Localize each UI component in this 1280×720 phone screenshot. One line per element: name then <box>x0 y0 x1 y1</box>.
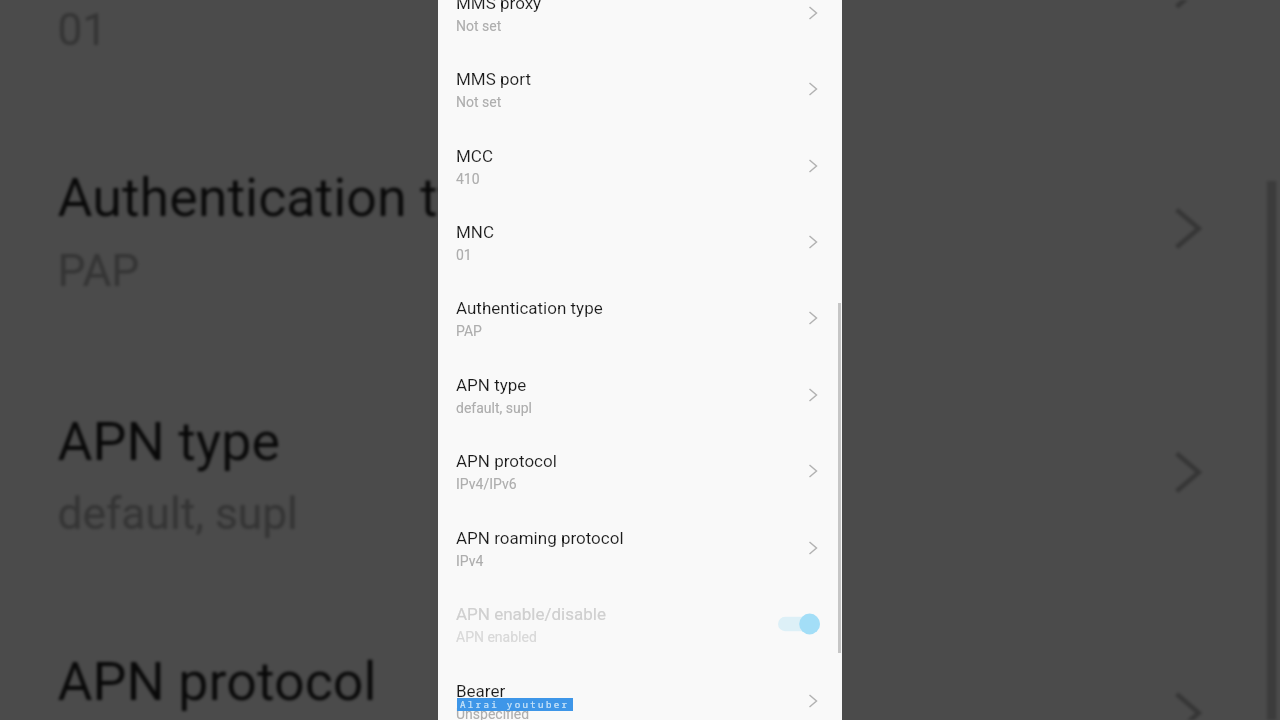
other: Open MCC <box>806 156 820 176</box>
other: Open APN type <box>1166 441 1210 504</box>
staticText: Unspecified <box>456 706 530 720</box>
button[interactable]: Bearer <box>438 665 842 720</box>
button[interactable]: MNC <box>0 0 1280 114</box>
staticText: APN type <box>456 375 527 395</box>
staticText: PAP <box>456 323 482 339</box>
staticText: APN protocol <box>57 650 377 713</box>
button[interactable]: MNC <box>438 206 842 282</box>
staticText: APN enable/disable <box>456 604 606 624</box>
staticText: Not set <box>456 18 502 34</box>
staticText: MCC <box>456 146 493 166</box>
staticText: MNC <box>456 222 495 242</box>
staticText: MMS proxy <box>456 0 542 13</box>
staticText: 01 <box>57 4 108 54</box>
staticText: PAP <box>57 244 140 295</box>
other: Open MNC <box>806 232 820 252</box>
button[interactable]: APN type <box>438 359 842 435</box>
staticText: APN type <box>57 409 282 472</box>
button[interactable]: APN roaming protocol <box>438 512 842 588</box>
staticText: default, supl <box>456 400 532 416</box>
staticText: Bearer <box>456 681 506 701</box>
button[interactable]: Authentication type <box>0 115 1280 355</box>
button[interactable]: MMS proxy <box>438 0 842 53</box>
staticText: IPv4/IPv6 <box>456 476 517 492</box>
staticText: Authentication type <box>456 298 603 318</box>
other: Open MMS port <box>806 79 820 99</box>
button[interactable]: APN enable/disable <box>438 588 842 664</box>
button[interactable]: APN protocol <box>438 435 842 511</box>
staticText: 01 <box>456 247 472 263</box>
other: Open Authentication type <box>806 308 820 328</box>
other: Open APN roaming protocol <box>806 538 820 558</box>
staticText: default, supl <box>57 488 298 539</box>
other: Open APN protocol <box>1166 681 1210 720</box>
staticText: 410 <box>456 171 480 187</box>
staticText: Authentication type <box>57 165 523 228</box>
other: Open MNC <box>1166 0 1210 20</box>
staticText: Alrai youtuber <box>460 698 570 711</box>
other: Open Authentication type <box>1166 197 1210 260</box>
staticText: APN enabled <box>456 629 537 645</box>
button[interactable]: Toggle APN enable/disable <box>778 612 822 636</box>
other: Open Bearer <box>806 691 820 711</box>
button[interactable]: MMS port <box>438 53 842 129</box>
button[interactable]: APN type <box>0 358 1280 599</box>
other: Open APN type <box>806 385 820 405</box>
staticText: APN protocol <box>456 451 557 471</box>
staticText: MMS port <box>456 69 531 89</box>
staticText: IPv4 <box>456 553 484 569</box>
other: Open MMS proxy <box>806 3 820 23</box>
staticText: Not set <box>456 94 502 110</box>
button[interactable]: APN protocol <box>0 599 1280 720</box>
other: Open APN protocol <box>806 461 820 481</box>
button[interactable]: MCC <box>438 130 842 206</box>
button[interactable]: Authentication type <box>438 282 842 358</box>
staticText: APN roaming protocol <box>456 528 624 548</box>
